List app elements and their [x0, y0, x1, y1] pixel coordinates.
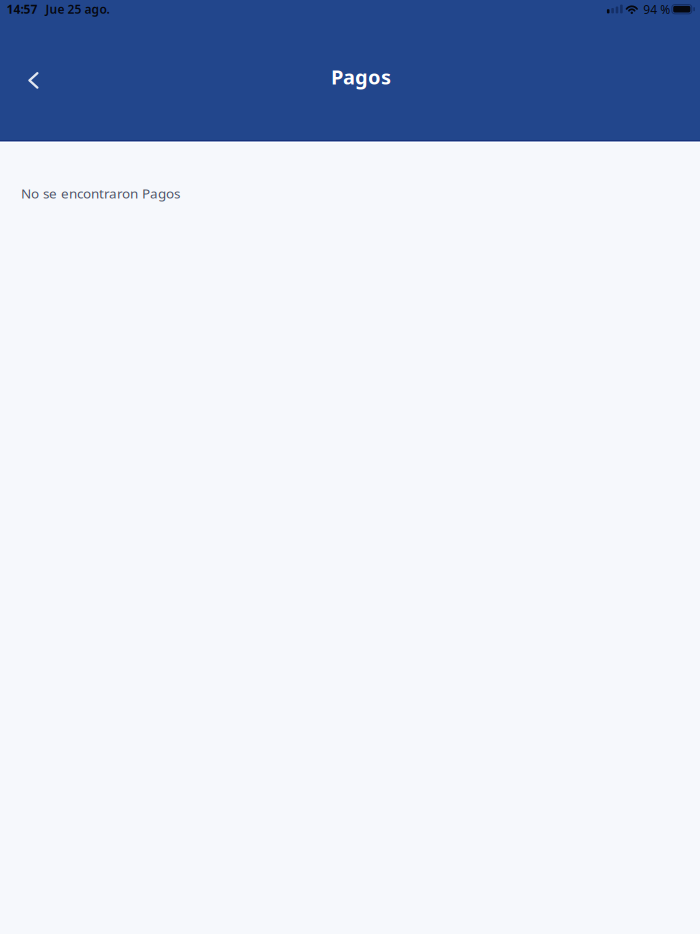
button[interactable]: Back — [11, 58, 55, 102]
staticText: Jue 25 ago. — [45, 1, 109, 17]
staticText: 94 % — [643, 1, 670, 17]
staticText: Pagos — [331, 63, 391, 90]
staticText: No se encontraron Pagos — [21, 184, 180, 202]
staticText: 14:57 — [7, 1, 38, 17]
